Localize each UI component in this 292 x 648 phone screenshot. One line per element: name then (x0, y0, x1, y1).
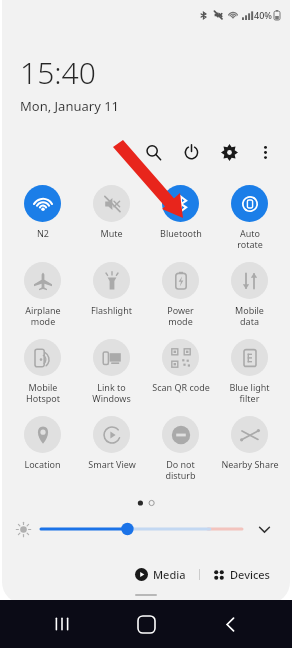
button[interactable]: Link to Windows (77, 335, 146, 408)
button[interactable]: Expand brightness settings (252, 517, 276, 541)
staticText: Media (153, 567, 186, 582)
staticText: Do not disturb (165, 458, 196, 481)
staticText: Flashlight (91, 304, 132, 316)
staticText: Mute (100, 227, 123, 239)
button[interactable]: Power (176, 137, 206, 167)
button[interactable]: Brightness (41, 518, 242, 540)
button[interactable]: Auto rotate (215, 181, 284, 254)
button[interactable]: Mobile Hotspot (8, 335, 77, 408)
staticText: Bluetooth (160, 227, 202, 239)
button[interactable]: Blue light filter (215, 335, 284, 408)
staticText: Devices (230, 567, 270, 582)
button[interactable]: Settings (214, 137, 244, 167)
button[interactable]: Power mode (146, 258, 215, 331)
staticText: Link to Windows (92, 381, 131, 404)
button[interactable]: Flashlight (77, 258, 146, 320)
button[interactable]: N2 (8, 181, 77, 243)
button[interactable]: Airplane mode (8, 258, 77, 331)
staticText: Mobile data (235, 304, 264, 327)
staticText: N2 (37, 227, 49, 239)
staticText: Scan QR code (152, 381, 210, 393)
staticText: 40% (254, 9, 272, 21)
button[interactable]: Mobile data (215, 258, 284, 331)
staticText: Mon, January 11 (20, 97, 120, 115)
button[interactable]: Nearby Share (215, 412, 284, 474)
staticText: Power mode (167, 304, 194, 327)
button[interactable]: Devices (209, 563, 274, 586)
staticText: Airplane mode (25, 304, 61, 327)
button[interactable]: Home (124, 602, 168, 646)
button[interactable]: Recent apps (40, 602, 84, 646)
button[interactable]: More options (250, 137, 280, 167)
button[interactable]: Do not disturb (146, 412, 215, 485)
button[interactable]: Back (208, 602, 252, 646)
button[interactable]: Location (8, 412, 77, 474)
button[interactable]: Smart View (77, 412, 146, 474)
button[interactable]: Scan QR code (146, 335, 215, 397)
button[interactable]: Media (131, 563, 190, 586)
button[interactable]: Mute (77, 181, 146, 243)
staticText: Auto rotate (237, 227, 263, 250)
staticText: Nearby Share (221, 458, 279, 470)
button[interactable]: Search (138, 137, 168, 167)
staticText: Blue light filter (229, 381, 270, 404)
staticText: Mobile Hotspot (26, 381, 60, 404)
staticText: Location (24, 458, 61, 470)
button[interactable]: Bluetooth (146, 181, 215, 243)
staticText: Smart View (88, 458, 136, 470)
staticText: 15:40 (20, 52, 96, 93)
